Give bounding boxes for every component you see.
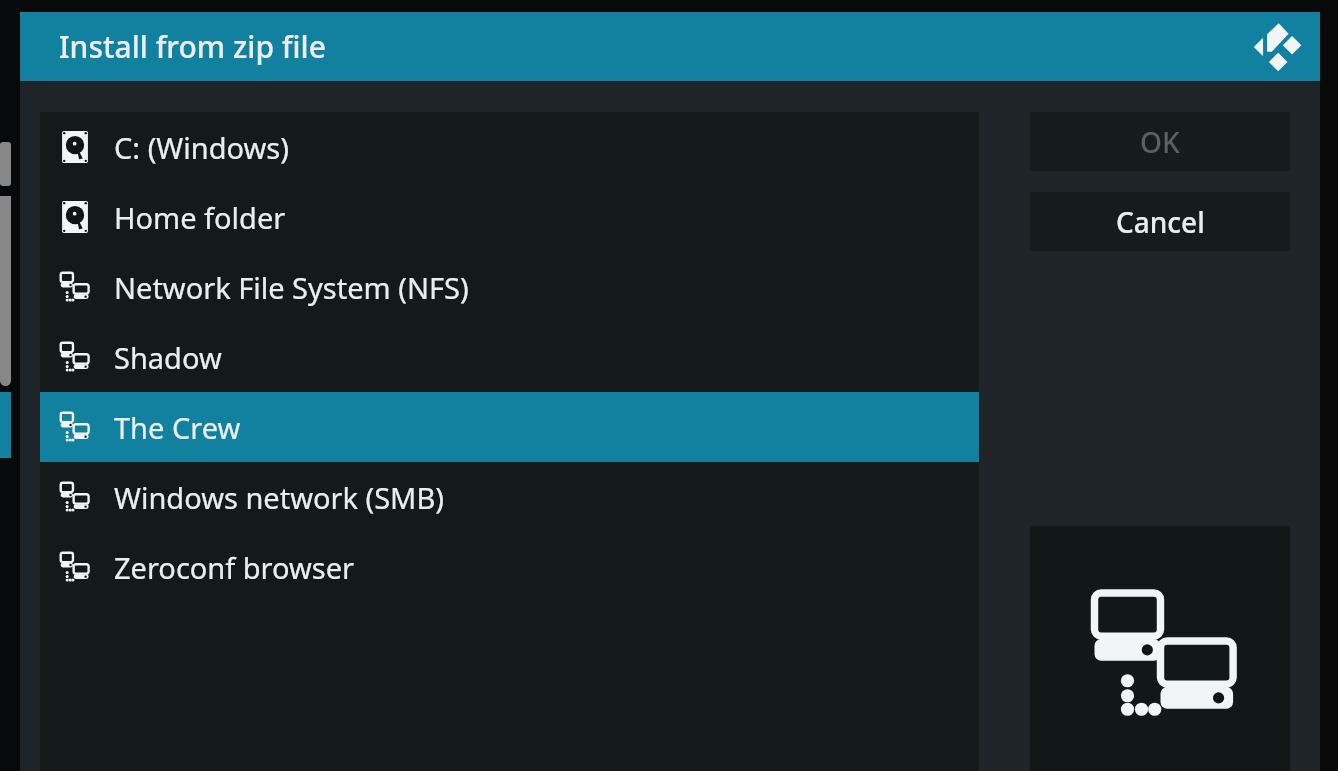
staticText: Install from zip file (59, 26, 326, 67)
button[interactable]: OK (1030, 112, 1290, 171)
staticText: Cancel (1116, 203, 1205, 241)
button[interactable]: C: (Windows) (40, 112, 979, 182)
button[interactable]: Cancel (1030, 192, 1290, 251)
staticText: Network File System (NFS) (114, 268, 469, 307)
button[interactable]: Zeroconf browser (40, 532, 979, 602)
button[interactable]: Windows network (SMB) (40, 462, 979, 532)
button[interactable]: The Crew (40, 392, 979, 462)
staticText: OK (1140, 123, 1180, 161)
button[interactable]: Home folder (40, 182, 979, 252)
other: Kodi logo (1248, 18, 1306, 76)
staticText: Shadow (114, 338, 222, 377)
staticText: Zeroconf browser (114, 548, 355, 587)
staticText: C: (Windows) (114, 128, 289, 167)
button[interactable]: Network File System (NFS) (40, 252, 979, 322)
staticText: The Crew (114, 408, 241, 447)
staticText: Windows network (SMB) (114, 478, 444, 517)
staticText: Home folder (114, 198, 286, 237)
button[interactable]: Shadow (40, 322, 979, 392)
